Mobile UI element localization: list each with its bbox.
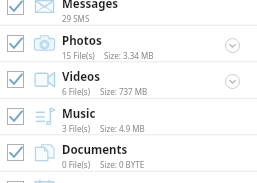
button[interactable]: Music — [0, 99, 257, 136]
button[interactable]: Documents — [0, 135, 257, 172]
staticText: 0 File(s) — [62, 159, 91, 170]
staticText: Size: 3.34 MB — [104, 50, 154, 61]
staticText: Documents — [62, 142, 128, 158]
staticText: Videos — [62, 69, 101, 85]
staticText: Size: 4.9 MB — [100, 123, 145, 134]
staticText: 15 File(s) — [62, 50, 95, 61]
staticText: Size: 737 MB — [100, 86, 148, 97]
button[interactable]: Calendar — [0, 172, 257, 183]
staticText: Photos — [62, 33, 102, 49]
staticText: 29 SMS — [62, 13, 90, 24]
button[interactable]: Messages — [0, 0, 257, 26]
staticText: 6 File(s) — [62, 86, 91, 97]
staticText: Music — [62, 106, 96, 122]
button[interactable]: Expand — [219, 68, 245, 94]
button[interactable]: Expand — [219, 32, 245, 58]
staticText: Size: 0 BYTE — [100, 159, 145, 170]
button[interactable]: Videos — [0, 62, 257, 99]
staticText: 3 File(s) — [62, 123, 91, 134]
button[interactable]: Photos — [0, 26, 257, 63]
staticText: Messages — [62, 0, 119, 12]
